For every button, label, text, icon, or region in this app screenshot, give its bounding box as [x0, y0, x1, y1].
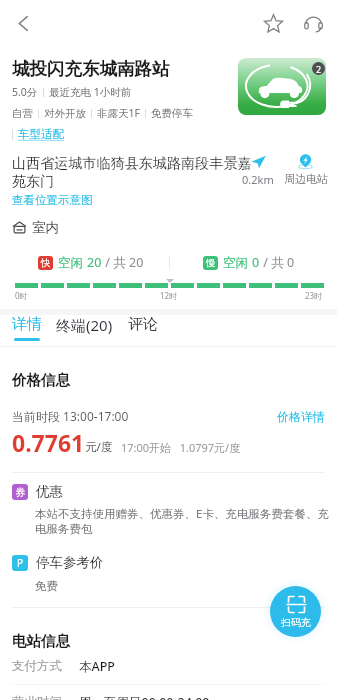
staticText: 详情	[12, 315, 42, 334]
staticText: 12时	[160, 290, 178, 301]
staticText: 0	[252, 254, 260, 271]
staticText: 20	[129, 254, 144, 271]
staticText: 0时	[15, 290, 28, 301]
staticText: 停车参考价	[36, 554, 104, 571]
staticText: 支付方式	[12, 658, 62, 674]
staticText: 扫码充	[281, 616, 311, 629]
button[interactable]: 详情	[12, 315, 42, 341]
staticText: 5.0分	[12, 85, 38, 99]
staticText: 优惠	[36, 483, 63, 500]
staticText: 价格信息	[12, 371, 70, 389]
staticText: 本站不支持使用赠券、优惠券、E卡、充电服务费套餐、充电服务费包	[35, 506, 334, 537]
button[interactable]: 终端(20)	[56, 315, 113, 335]
staticText: 快	[41, 257, 51, 269]
staticText: 0.7761	[12, 427, 85, 458]
staticText: 慢	[206, 257, 216, 269]
staticText: 电站信息	[12, 632, 70, 650]
button[interactable]: 评论	[128, 315, 158, 334]
button[interactable]: Favorite	[257, 7, 289, 39]
staticText: 车型适配	[18, 127, 64, 141]
staticText: 查看位置示意图	[12, 193, 93, 207]
staticText: 本APP	[79, 658, 115, 675]
staticText: 20	[87, 254, 102, 271]
staticText: 2	[316, 63, 322, 75]
staticText: 券	[15, 486, 25, 499]
staticText: 最近充电 1小时前	[49, 85, 132, 99]
staticText: 17:00开始 1.0797元/度	[121, 440, 241, 455]
staticText: 周一至周日00:00-24:00	[79, 694, 210, 700]
staticText: 23时	[305, 290, 323, 301]
staticText: 价格详情	[277, 409, 325, 424]
staticText: P	[17, 556, 24, 570]
staticText: 0.2km	[242, 172, 274, 187]
button[interactable]: Customer support	[297, 7, 329, 39]
button[interactable]: 扫码充	[270, 586, 321, 637]
staticText: 终端(20)	[56, 315, 113, 335]
staticText: 非露天1F	[97, 106, 140, 120]
staticText: 周边电站	[284, 172, 328, 186]
staticText: 自营	[12, 107, 33, 120]
staticText: 0	[287, 254, 295, 271]
staticText: / 共	[260, 254, 287, 271]
button[interactable]: Back	[6, 6, 40, 40]
button[interactable]: 价格详情	[277, 409, 325, 424]
staticText: 城投闪充东城南路站	[12, 58, 170, 80]
staticText: 免费	[35, 579, 58, 593]
button[interactable]: 周边电站	[283, 153, 328, 186]
staticText: 对外开放	[44, 107, 86, 120]
staticText: 免费停车	[151, 107, 193, 120]
staticText: 评论	[128, 315, 158, 334]
staticText: 空闲	[58, 254, 87, 271]
button[interactable]: 查看位置示意图	[12, 193, 93, 207]
staticText: 元/度	[85, 439, 113, 455]
staticText: 当前时段 13:00-17:00	[12, 408, 129, 424]
button[interactable]: Navigate	[240, 153, 276, 187]
staticText: 空闲	[223, 254, 252, 271]
staticText: 室内	[32, 219, 59, 236]
button[interactable]: 车型适配	[12, 127, 64, 141]
staticText: 山西省运城市临猗县东城路南段丰景嘉苑东门	[12, 154, 255, 190]
staticText: 营业时间	[12, 694, 62, 700]
staticText: / 共	[102, 254, 129, 271]
